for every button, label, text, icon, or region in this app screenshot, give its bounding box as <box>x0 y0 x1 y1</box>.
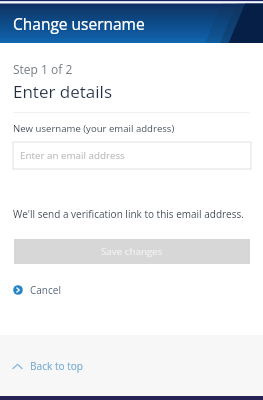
button[interactable]: Enter an email address <box>13 142 251 169</box>
button[interactable]: Save changes <box>14 239 250 264</box>
staticText: We'll send a verification link to this e… <box>13 207 244 221</box>
button[interactable]: Cancel <box>13 283 61 297</box>
staticText: Enter an email address <box>20 149 125 162</box>
staticText: Save changes <box>101 245 163 258</box>
staticText: New username (your email address) <box>13 122 175 135</box>
staticText: Back to top <box>30 359 84 373</box>
other: Cancel <box>13 285 23 295</box>
staticText: Change username <box>13 13 145 34</box>
staticText: Enter details <box>13 80 112 103</box>
staticText: Cancel <box>30 283 61 297</box>
button[interactable]: Back to top <box>13 359 84 373</box>
staticText: Step 1 of 2 <box>13 61 73 77</box>
